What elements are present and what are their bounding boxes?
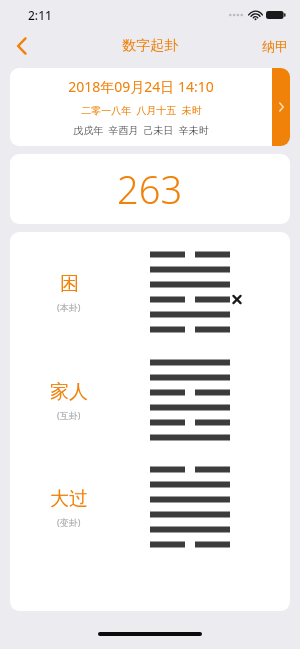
staticText: (本卦) [57,301,81,313]
staticText: (变卦) [57,516,81,528]
staticText: (互卦) [57,409,81,421]
button[interactable]: 纳甲 [250,30,300,62]
button[interactable]: 2018年09月24日 14:10 [10,68,290,146]
staticText: 263 [117,163,183,215]
staticText: 2:11 [28,7,52,23]
staticText: 大过 [50,487,88,511]
staticText: 家人 [50,380,88,404]
staticText: 二零一八年 八月十五 未时 [81,103,202,117]
staticText: 数字起卦 [122,37,178,55]
staticText: 纳甲 [262,38,288,54]
staticText: 戊戌年 辛酉月 己未日 辛未时 [73,123,209,137]
button[interactable]: Back [0,30,44,62]
staticText: 困 [60,272,79,296]
button[interactable]: 263 [10,154,290,224]
staticText: 2018年09月24日 14:10 [68,77,214,96]
button[interactable]: Edit date [272,68,290,146]
